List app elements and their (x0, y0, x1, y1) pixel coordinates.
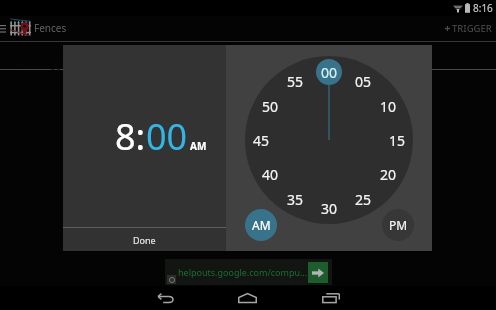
staticText: 55 (287, 72, 304, 91)
staticText: Fences (34, 21, 67, 35)
button[interactable]: Done (63, 228, 226, 251)
staticText: 45 (253, 131, 270, 150)
staticText: Done (133, 234, 156, 246)
staticText: helpouts.google.com/compu… (178, 266, 308, 278)
button[interactable]: Navigation menu (0, 16, 10, 41)
staticText: 50 (262, 97, 279, 116)
staticText: 15 (389, 131, 406, 150)
button[interactable]: Home (225, 286, 270, 310)
staticText: 8:16 (473, 1, 493, 15)
staticText: AM (252, 217, 271, 233)
staticText: TRIGGER (452, 22, 492, 35)
button[interactable]: 00 (316, 59, 342, 85)
staticText: PM (389, 217, 408, 233)
button[interactable]: PM (382, 209, 414, 241)
staticText: 00 (321, 63, 338, 82)
staticText: 10 (380, 97, 397, 116)
staticText: 30 (321, 199, 338, 218)
staticText: 40 (262, 165, 279, 184)
button[interactable]: Site information (167, 275, 176, 284)
button[interactable]: Back (142, 286, 187, 310)
button[interactable]: AM (245, 209, 277, 241)
staticText: 20 (380, 165, 397, 184)
staticText: Fence triggers · Location reminders · Wi… (14, 58, 192, 70)
staticText: 05 (355, 72, 372, 91)
button[interactable]: Recent apps (308, 286, 353, 310)
staticText: AM (190, 139, 207, 153)
button[interactable]: TRIGGER (437, 16, 496, 41)
staticText: 35 (287, 190, 304, 209)
button[interactable]: Go (308, 262, 328, 283)
staticText: 25 (355, 190, 372, 209)
staticText: 8: (115, 112, 146, 161)
staticText: 00 (146, 112, 188, 161)
